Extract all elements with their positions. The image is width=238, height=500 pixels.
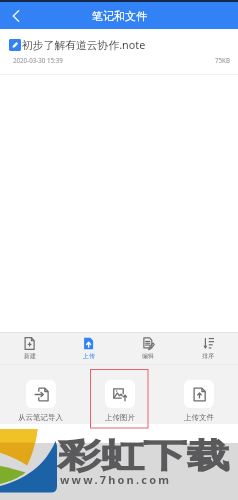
- staticText: 笔记和文件: [92, 9, 147, 23]
- staticText: 上传文件: [184, 413, 214, 422]
- button[interactable]: 初步了解有道云协作.note: [0, 29, 238, 75]
- staticText: 新建: [24, 352, 36, 360]
- staticText: 编辑: [142, 352, 154, 360]
- button[interactable]: 新建: [0, 333, 59, 364]
- staticText: 75KB: [215, 56, 230, 64]
- button[interactable]: 编辑: [118, 333, 178, 364]
- staticText: 上传: [83, 352, 95, 360]
- staticText: 2020-03-30 15:39: [13, 56, 63, 64]
- button[interactable]: 上传图片: [105, 365, 135, 424]
- button[interactable]: 排序: [178, 333, 238, 364]
- staticText: www.7hon.com: [60, 472, 172, 487]
- staticText: 彩虹下载: [58, 435, 230, 477]
- staticText: 从云笔记导入: [18, 413, 63, 422]
- button[interactable]: 上传文件: [184, 365, 214, 424]
- staticText: 初步了解有道云协作.note: [22, 37, 146, 52]
- staticText: 排序: [202, 352, 214, 360]
- button[interactable]: 上传: [59, 333, 118, 364]
- button[interactable]: Back: [0, 2, 31, 29]
- staticText: 上传图片: [105, 413, 135, 422]
- button[interactable]: 从云笔记导入: [18, 365, 63, 424]
